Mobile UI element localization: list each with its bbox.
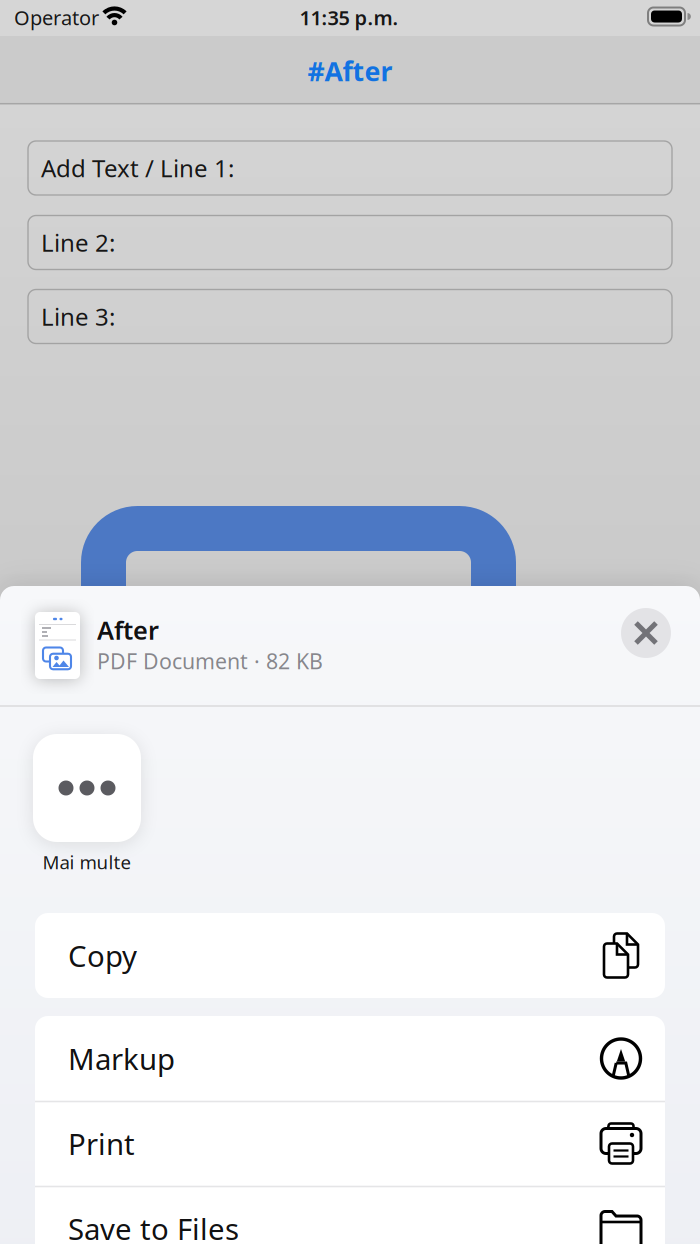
button[interactable]: Save to Files <box>35 1186 665 1244</box>
staticText: PDF Document · 82 KB <box>97 647 323 675</box>
button[interactable]: Print <box>35 1101 665 1186</box>
button[interactable]: Markup <box>35 1016 665 1101</box>
button[interactable]: Mai multe <box>33 734 141 874</box>
staticText: After <box>97 613 159 647</box>
button[interactable]: Line 3: <box>28 289 672 343</box>
staticText: Add Text / Line 1: <box>41 152 234 184</box>
button[interactable]: Line 2: <box>28 215 672 269</box>
staticText: Operator <box>14 4 99 31</box>
staticText: Line 3: <box>41 301 115 332</box>
staticText: Line 2: <box>41 227 115 258</box>
staticText: Markup <box>68 1039 175 1078</box>
staticText: Mai multe <box>42 850 131 874</box>
staticText: Copy <box>68 936 137 975</box>
button[interactable]: Copy <box>35 913 665 998</box>
staticText: 11:35 p.m. <box>299 4 398 31</box>
staticText: #After <box>307 53 392 89</box>
staticText: Print <box>68 1124 135 1163</box>
staticText: Save to Files <box>68 1209 239 1244</box>
button[interactable]: Add Text / Line 1: <box>28 141 672 195</box>
button[interactable]: Close <box>621 608 671 658</box>
